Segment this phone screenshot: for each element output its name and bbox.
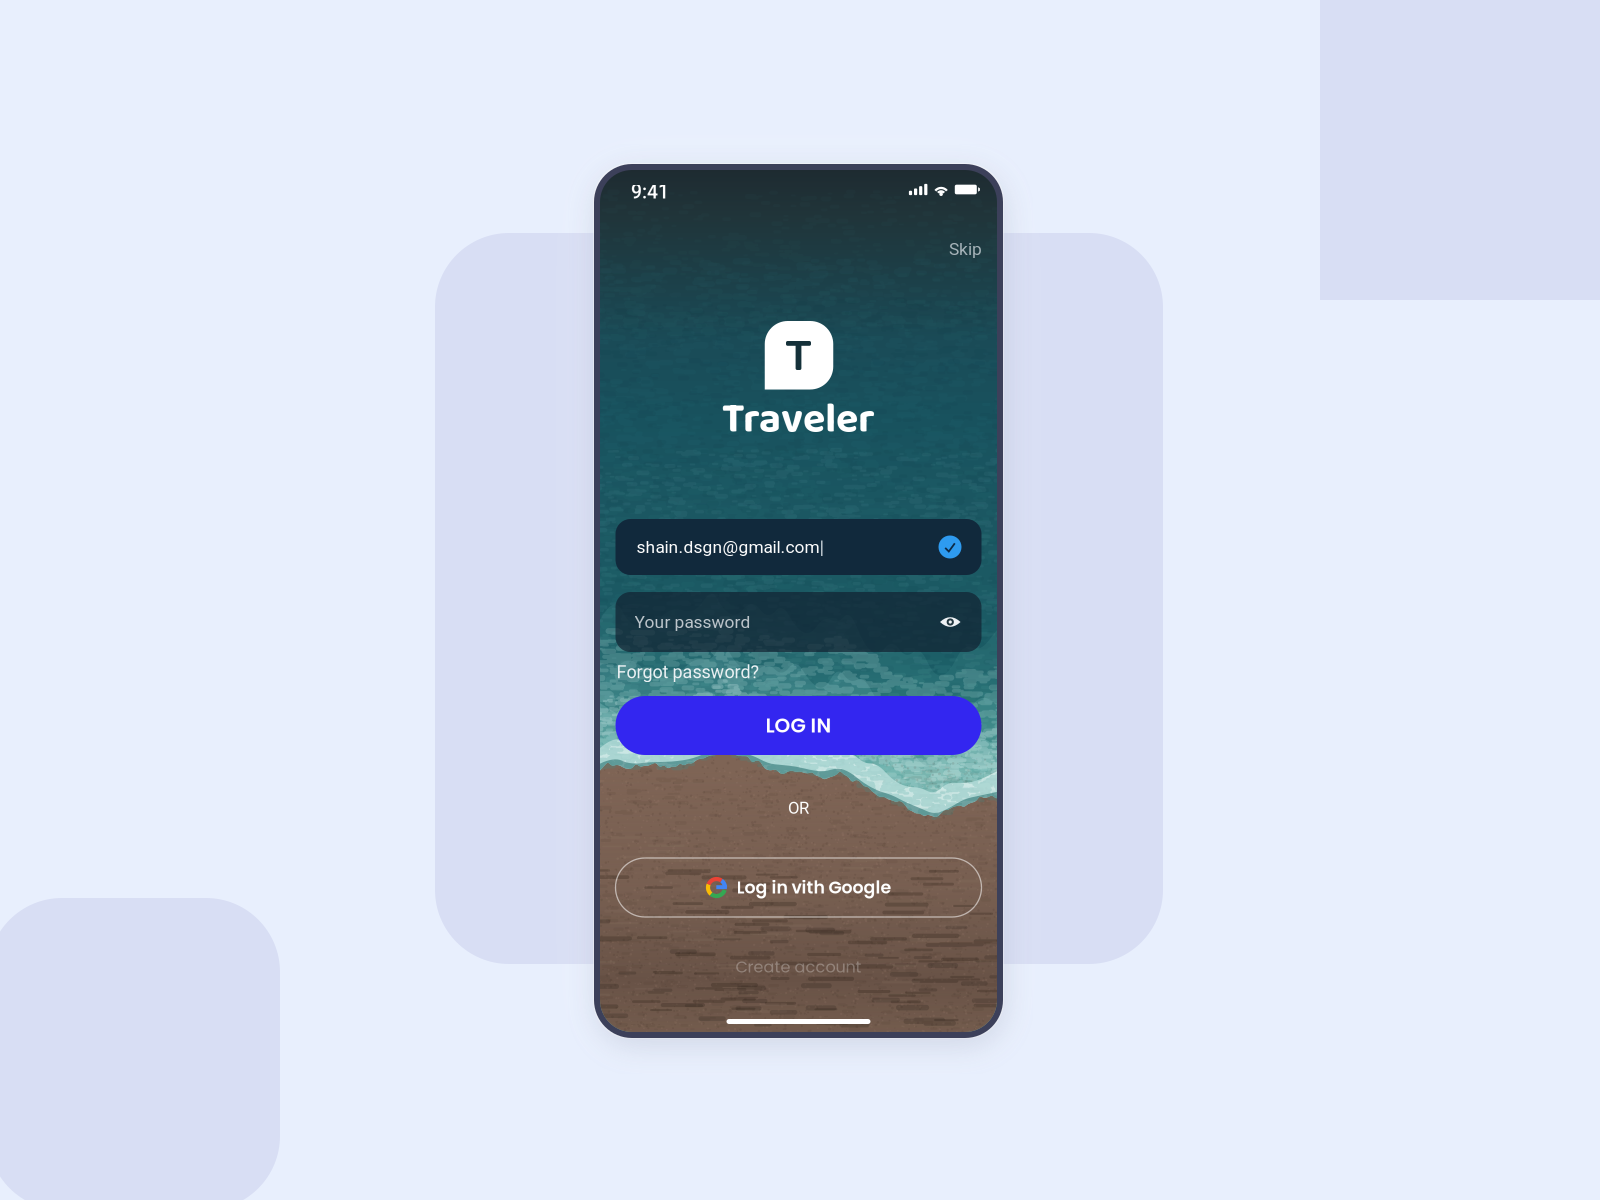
staticText: | <box>819 536 824 558</box>
staticText: Traveler <box>722 387 875 453</box>
staticText: Skip <box>949 239 982 259</box>
button[interactable]: Forgot password? <box>616 661 836 683</box>
button[interactable]: LOG IN <box>615 696 981 755</box>
staticText: Your password <box>634 612 750 632</box>
button[interactable]: Skip <box>918 236 982 262</box>
staticText: Forgot password? <box>616 661 759 683</box>
button[interactable]: Log in vith Google <box>615 858 981 917</box>
staticText: Log in vith Google <box>736 875 891 900</box>
staticText: OR <box>788 798 809 818</box>
staticText: shain.dsgn@gmail.com <box>636 537 819 557</box>
button[interactable]: Create account <box>600 956 997 978</box>
staticText: LOG IN <box>765 711 831 739</box>
staticText: 9:41 <box>631 181 669 203</box>
staticText: Create account <box>735 956 861 978</box>
